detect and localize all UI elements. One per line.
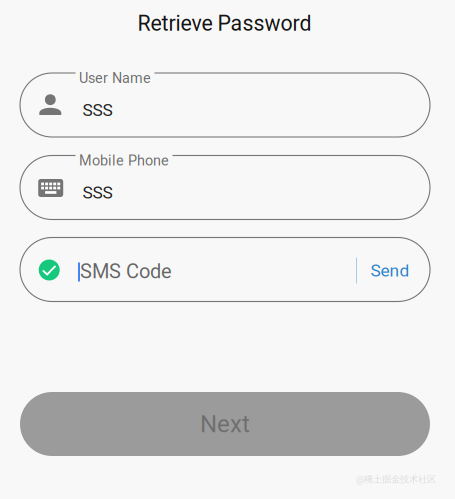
staticText: Send <box>370 260 409 281</box>
staticText: SSS <box>82 182 112 203</box>
staticText: SMS Code <box>80 260 172 283</box>
staticText: Next <box>200 410 250 438</box>
button[interactable]: Send <box>353 246 426 294</box>
staticText: User Name <box>79 70 151 86</box>
button[interactable]: Next <box>20 392 430 456</box>
button[interactable]: SSS <box>0 0 455 499</box>
staticText: Retrieve Password <box>137 11 311 36</box>
staticText: Mobile Phone <box>79 152 169 169</box>
staticText: SSS <box>82 100 112 120</box>
button[interactable]: SSS <box>0 0 455 499</box>
staticText: @稀土掘金技术社区 <box>356 474 436 485</box>
